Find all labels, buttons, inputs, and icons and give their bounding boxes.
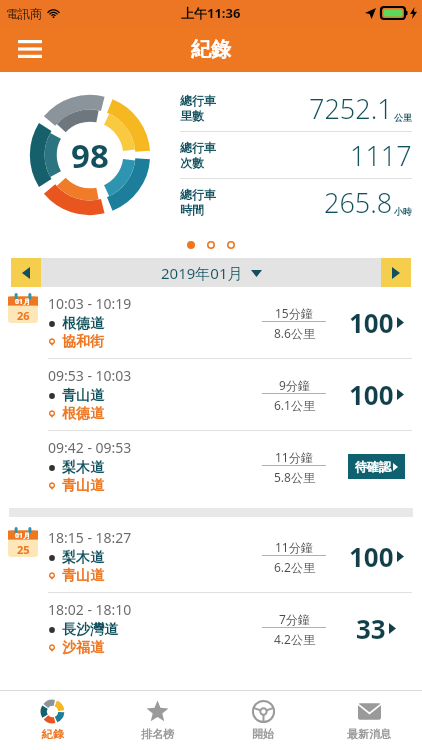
- staticText: 01月: [15, 531, 31, 541]
- staticText: 沙福道: [62, 639, 104, 657]
- button[interactable]: 01月: [0, 521, 422, 592]
- staticText: 排名榜: [141, 727, 174, 741]
- staticText: 15分鐘: [275, 305, 313, 321]
- staticText: 總行車: [180, 93, 216, 108]
- staticText: 梨木道: [62, 459, 104, 477]
- staticText: 電訊商: [6, 6, 42, 21]
- staticText: 7252.1: [309, 90, 393, 127]
- staticText: 100: [349, 377, 394, 412]
- staticText: 協和街: [62, 333, 104, 351]
- staticText: 7分鐘: [279, 611, 310, 627]
- staticText: 09:53 - 10:03: [48, 366, 132, 385]
- staticText: 9分鐘: [279, 377, 310, 393]
- button[interactable]: Next month: [381, 258, 411, 287]
- staticText: 紀錄: [191, 37, 231, 62]
- staticText: 紀錄: [42, 727, 64, 741]
- staticText: 25: [17, 542, 30, 557]
- staticText: 長沙灣道: [62, 621, 118, 639]
- staticText: 33: [356, 611, 386, 646]
- staticText: 98: [71, 133, 109, 178]
- button[interactable]: 紀錄: [0, 691, 105, 750]
- staticText: 265.8: [324, 184, 393, 221]
- staticText: 5.8公里: [274, 469, 315, 485]
- button[interactable]: 2019年01月: [41, 258, 381, 287]
- staticText: 里數: [180, 108, 204, 123]
- staticText: 18:15 - 18:27: [48, 528, 132, 547]
- staticText: 100: [349, 539, 394, 574]
- button[interactable]: 待確認: [355, 459, 398, 474]
- staticText: 小時: [394, 206, 412, 217]
- staticText: 1117: [350, 137, 412, 174]
- staticText: 開始: [252, 727, 274, 741]
- button[interactable]: 開始: [210, 691, 316, 750]
- button[interactable]: 01月: [0, 287, 422, 358]
- staticText: 26: [17, 308, 30, 323]
- staticText: 梨木道: [62, 549, 104, 567]
- staticText: 待確認: [355, 459, 391, 474]
- staticText: 100: [349, 305, 394, 340]
- staticText: 2019年01月: [161, 263, 243, 283]
- button[interactable]: 18:02 - 18:10: [0, 593, 422, 664]
- staticText: 青山道: [62, 477, 104, 495]
- button[interactable]: 最新消息: [316, 691, 422, 750]
- staticText: 根德道: [62, 315, 104, 333]
- staticText: 青山道: [62, 567, 104, 585]
- staticText: 18:02 - 18:10: [48, 600, 132, 619]
- button[interactable]: 09:42 - 09:53: [0, 431, 422, 502]
- button[interactable]: Previous month: [11, 258, 41, 287]
- staticText: 公里: [394, 112, 412, 123]
- staticText: 上午11:36: [181, 4, 241, 22]
- button[interactable]: 09:53 - 10:03: [0, 359, 422, 430]
- staticText: 10:03 - 10:19: [48, 294, 132, 313]
- staticText: 09:42 - 09:53: [48, 438, 132, 457]
- button[interactable]: 排名榜: [105, 691, 210, 750]
- staticText: 6.1公里: [274, 397, 315, 413]
- staticText: 6.2公里: [274, 559, 315, 575]
- staticText: 根德道: [62, 405, 104, 423]
- button[interactable]: Menu: [10, 29, 50, 69]
- staticText: 01月: [15, 297, 31, 307]
- staticText: 最新消息: [347, 727, 391, 741]
- staticText: 11分鐘: [275, 539, 313, 555]
- staticText: 青山道: [62, 387, 104, 405]
- staticText: 總行車: [180, 140, 216, 155]
- staticText: 總行車: [180, 187, 216, 202]
- staticText: 8.6公里: [274, 325, 315, 341]
- staticText: 4.2公里: [274, 631, 315, 647]
- staticText: 時間: [180, 202, 204, 217]
- staticText: 11分鐘: [275, 449, 313, 465]
- staticText: 次數: [180, 155, 204, 170]
